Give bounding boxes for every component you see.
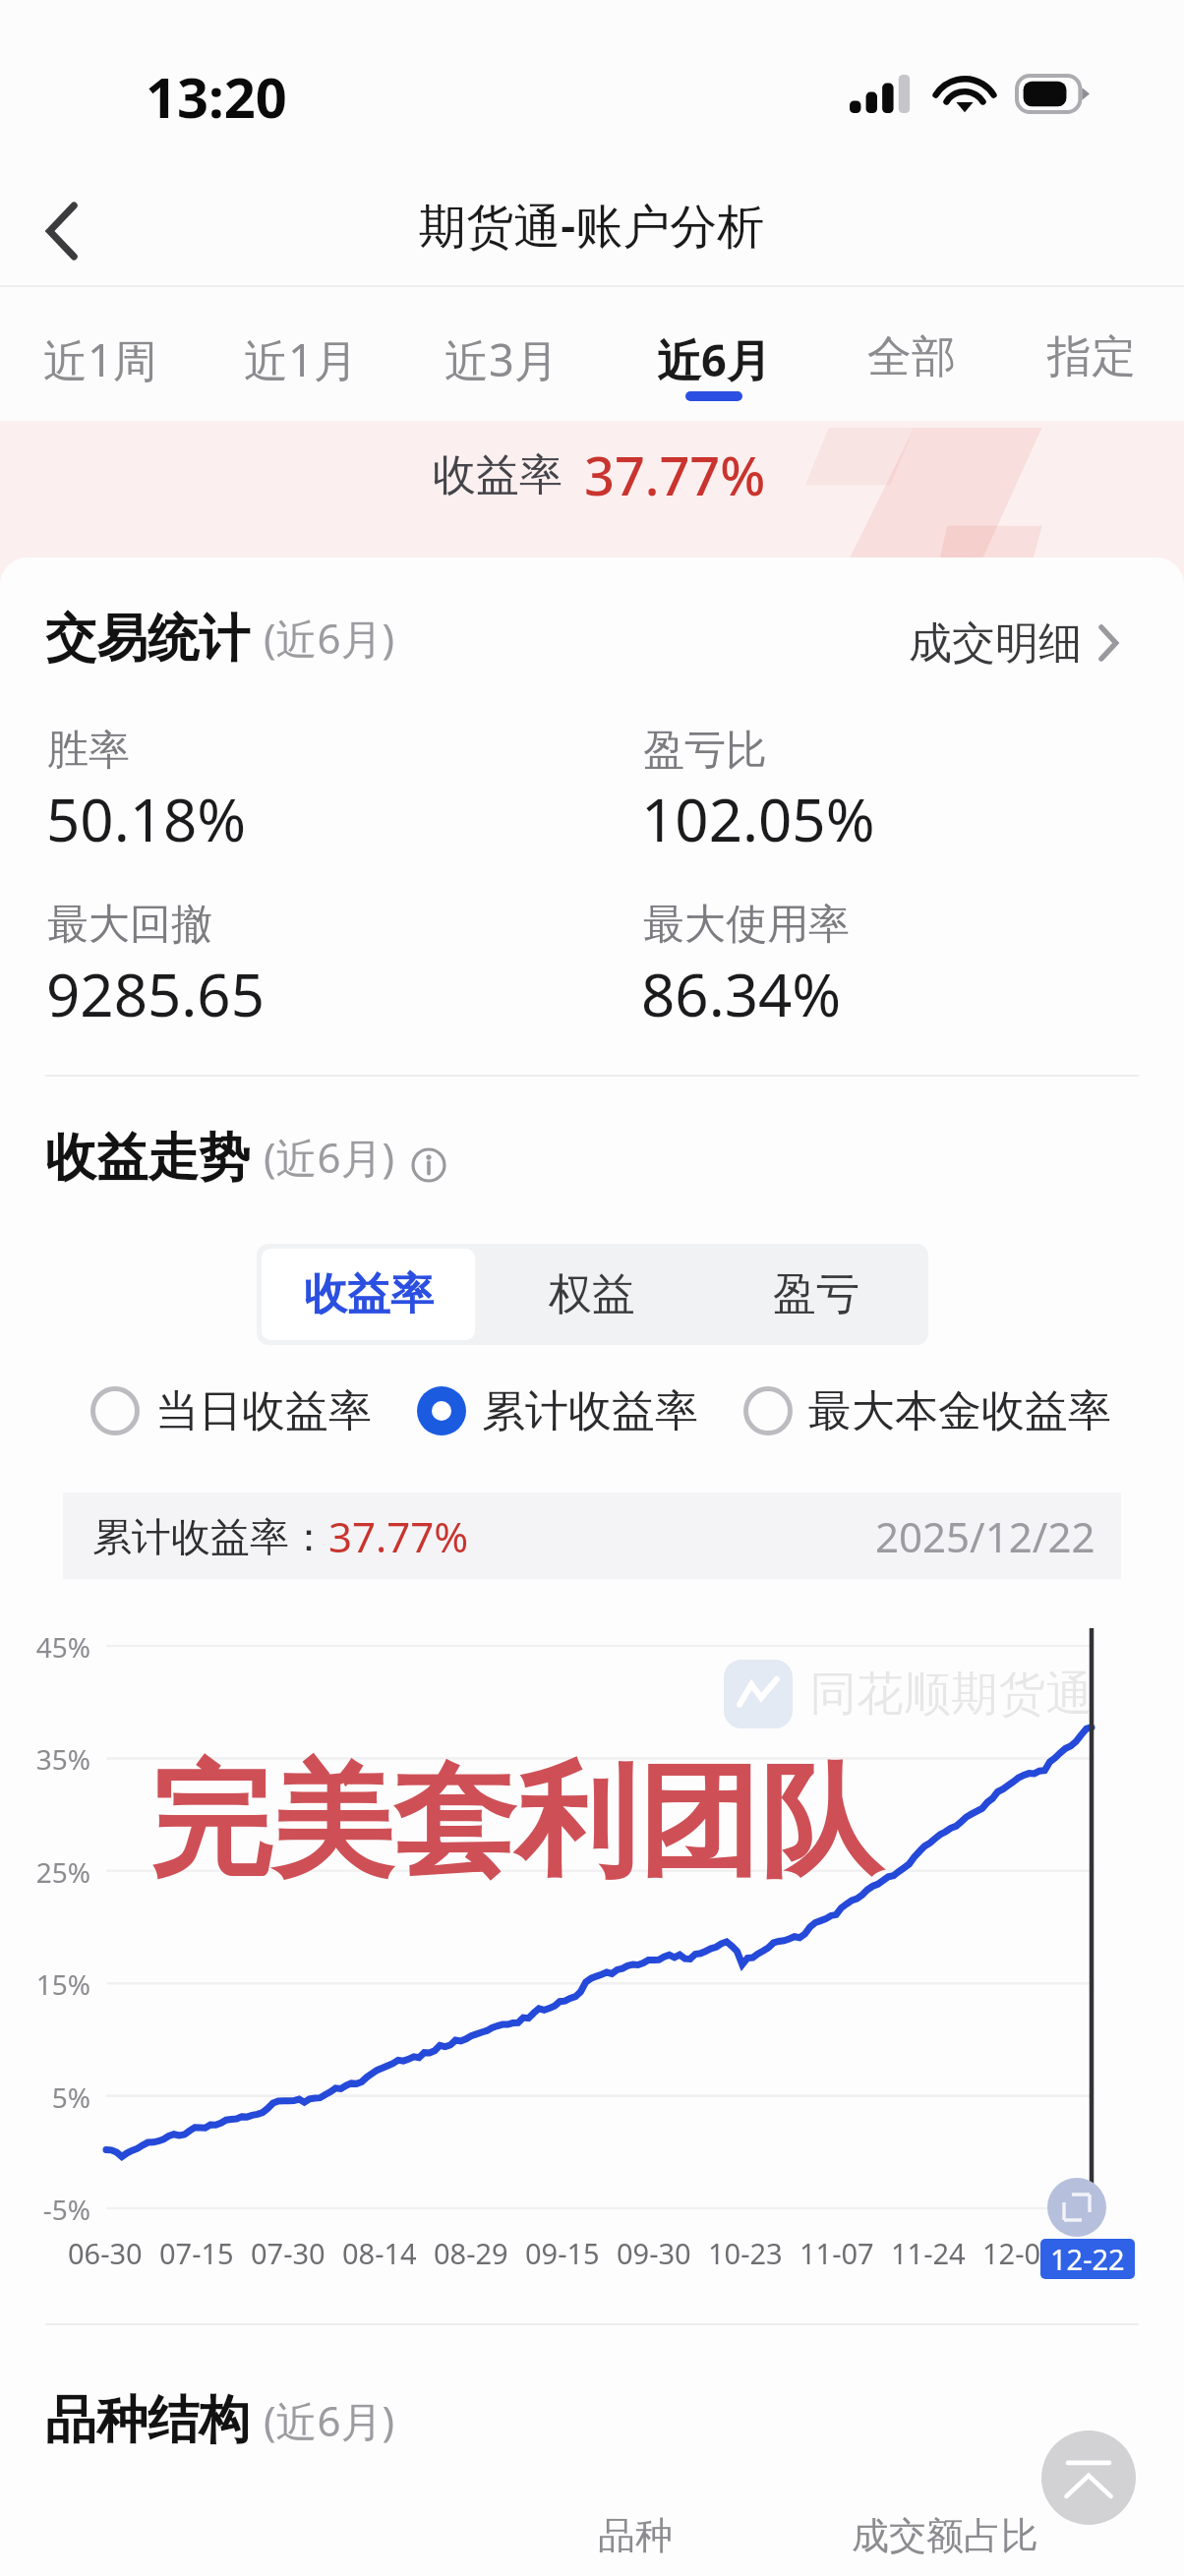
staticText: 期货通-账户分析	[419, 193, 765, 258]
staticText: 07-15	[159, 2234, 234, 2272]
button[interactable]: 最大本金收益率	[743, 1381, 1111, 1440]
staticText: 25%	[0, 1853, 90, 1891]
staticText: 累计收益率：	[92, 1512, 328, 1561]
staticText: 近1月	[244, 329, 358, 389]
staticText: 盈亏比	[643, 725, 767, 777]
staticText: 5%	[0, 2078, 90, 2116]
button[interactable]: 近6月	[616, 285, 812, 421]
staticText: 收益率	[433, 448, 562, 502]
staticText: 完美套利团队	[149, 1746, 881, 1900]
staticText: (近6月)	[264, 1129, 395, 1185]
staticText: 近3月	[444, 329, 559, 389]
staticText: 收益率	[304, 1267, 434, 1321]
button[interactable]: 收益率	[262, 1249, 475, 1340]
staticText: 35%	[0, 1740, 90, 1778]
staticText: 9285.65	[46, 954, 265, 1034]
staticText: 权益	[549, 1267, 635, 1321]
button[interactable]: 权益	[485, 1249, 699, 1340]
staticText: 102.05%	[641, 779, 875, 859]
staticText: 当日收益率	[155, 1384, 372, 1438]
button[interactable]: 成交明细	[909, 609, 1119, 677]
staticText: 品种	[598, 2512, 673, 2559]
staticText: 品种结构	[45, 2388, 250, 2453]
staticText: 06-30	[68, 2234, 143, 2272]
staticText: 08-29	[434, 2234, 508, 2272]
button[interactable]: 指定	[993, 285, 1184, 421]
staticText: 最大回撤	[47, 899, 212, 951]
staticText: 09-15	[525, 2234, 600, 2272]
button[interactable]: Scroll to top	[1041, 2430, 1136, 2525]
button[interactable]: 盈亏	[709, 1249, 923, 1340]
staticText: 09-30	[617, 2234, 691, 2272]
staticText: 近1周	[43, 329, 157, 389]
staticText: 13:20	[146, 59, 287, 134]
staticText: 成交明细	[909, 616, 1082, 671]
staticText: 37.77%	[584, 439, 766, 511]
button[interactable]: 近1周	[2, 285, 199, 421]
button[interactable]: 当日收益率	[90, 1381, 372, 1440]
staticText: (近6月)	[264, 2392, 395, 2448]
staticText: 近6月	[657, 329, 771, 389]
staticText: 12-22	[1050, 2240, 1125, 2278]
staticText: 2025/12/22	[875, 1508, 1095, 1564]
staticText: 指定	[1047, 329, 1136, 385]
staticText: 全部	[867, 329, 956, 385]
staticText: 胜率	[47, 725, 130, 777]
staticText: 07-30	[251, 2234, 326, 2272]
staticText: -5%	[0, 2191, 90, 2228]
staticText: 50.18%	[46, 779, 247, 859]
staticText: 12-09	[982, 2234, 1057, 2272]
staticText: 最大使用率	[643, 899, 850, 951]
button[interactable]: 全部	[813, 285, 1010, 421]
button[interactable]: 近1月	[203, 285, 399, 421]
staticText: 盈亏	[773, 1267, 859, 1321]
staticText: 11-24	[891, 2234, 966, 2272]
staticText: 15%	[0, 1965, 90, 2003]
staticText: 同花顺期货通	[809, 1665, 1093, 1724]
staticText: 08-14	[342, 2234, 417, 2272]
staticText: 收益走势	[45, 1126, 250, 1191]
staticText: 最大本金收益率	[808, 1384, 1111, 1438]
staticText: 11-07	[799, 2234, 874, 2272]
staticText: 86.34%	[641, 954, 842, 1034]
button[interactable]: 近3月	[403, 285, 600, 421]
staticText: 37.77%	[328, 1508, 469, 1564]
staticText: 交易统计	[45, 607, 250, 672]
staticText: 成交额占比	[852, 2512, 1038, 2559]
button[interactable]: Expand chart	[1047, 2178, 1106, 2237]
staticText: 10-23	[708, 2234, 783, 2272]
button[interactable]: 累计收益率	[417, 1381, 698, 1440]
staticText: 45%	[0, 1628, 90, 1666]
staticText: (近6月)	[264, 610, 395, 666]
button[interactable]: Back	[19, 177, 105, 285]
staticText: 累计收益率	[482, 1384, 698, 1438]
